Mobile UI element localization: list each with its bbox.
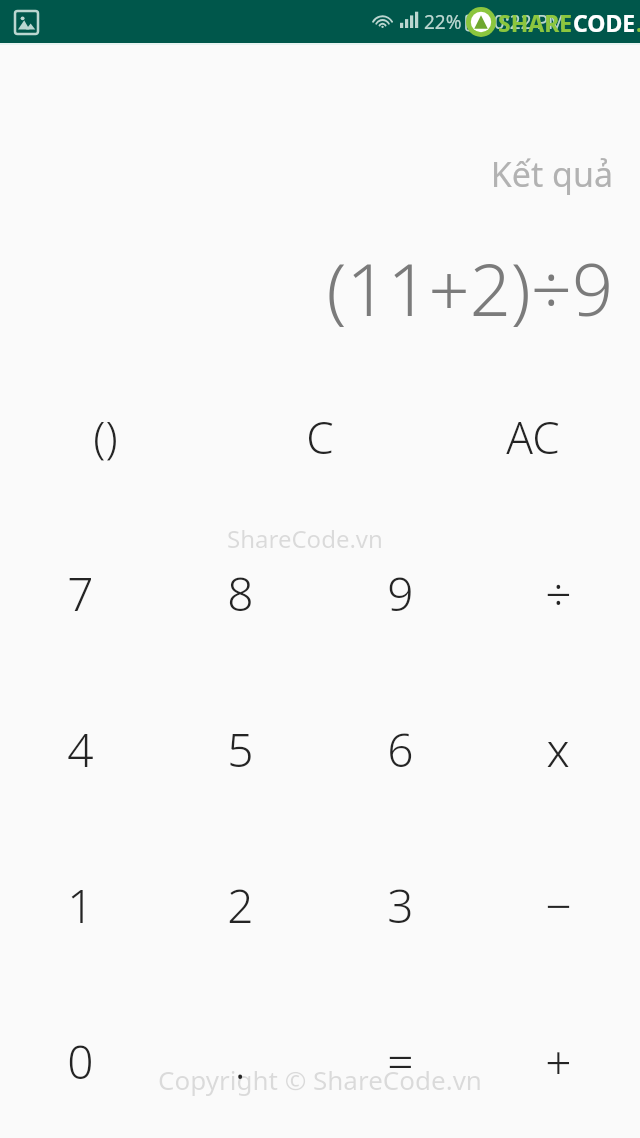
button[interactable]: 1 [5, 835, 155, 975]
staticText: Copyright © ShareCode.vn [0, 1062, 640, 1097]
button[interactable]: () [30, 367, 180, 507]
staticText: 9 [387, 562, 414, 625]
button[interactable]: 6 [325, 679, 475, 819]
button[interactable]: 3 [325, 835, 475, 975]
staticText: 0 [67, 1030, 94, 1093]
staticText: (11+2)÷9 [113, 239, 613, 337]
staticText: .vn [636, 7, 640, 38]
button[interactable]: C [245, 367, 395, 507]
staticText: 5 [227, 718, 254, 781]
staticText: . [234, 1030, 246, 1093]
staticText: C [306, 407, 334, 467]
staticText: AC [506, 407, 560, 467]
staticText: 3 [387, 874, 414, 937]
staticText: 4 [67, 718, 94, 781]
other: Screenshot notification [15, 11, 38, 34]
button[interactable]: AC [458, 367, 608, 507]
button[interactable]: 7 [5, 523, 155, 663]
button[interactable]: = [325, 991, 475, 1131]
staticText: CODE [573, 7, 636, 38]
button[interactable]: + [483, 991, 633, 1131]
button[interactable]: 0 [5, 991, 155, 1131]
button[interactable]: x [483, 679, 633, 819]
staticText: Kết quả [213, 151, 613, 197]
staticText: 6 [387, 718, 414, 781]
button[interactable]: 2 [165, 835, 315, 975]
staticText: + [545, 1030, 572, 1093]
staticText: 2 [227, 874, 254, 937]
button[interactable]: 8 [165, 523, 315, 663]
staticText: x [546, 718, 570, 781]
staticText: 1 [67, 874, 94, 937]
staticText: − [545, 874, 572, 937]
staticText: = [387, 1030, 414, 1093]
staticText: 22% [424, 9, 462, 35]
button[interactable]: 5 [165, 679, 315, 819]
staticText: () [93, 407, 118, 467]
staticText: 10:22 PM [483, 9, 566, 35]
staticText: 8 [227, 562, 254, 625]
button[interactable]: − [483, 835, 633, 975]
button[interactable]: . [165, 991, 315, 1131]
staticText: ShareCode.vn [227, 522, 383, 555]
button[interactable]: 4 [5, 679, 155, 819]
staticText: SHARE [498, 7, 573, 38]
button[interactable]: ÷ [483, 523, 633, 663]
staticText: 7 [67, 562, 94, 625]
button[interactable]: 9 [325, 523, 475, 663]
staticText: ÷ [545, 562, 572, 625]
